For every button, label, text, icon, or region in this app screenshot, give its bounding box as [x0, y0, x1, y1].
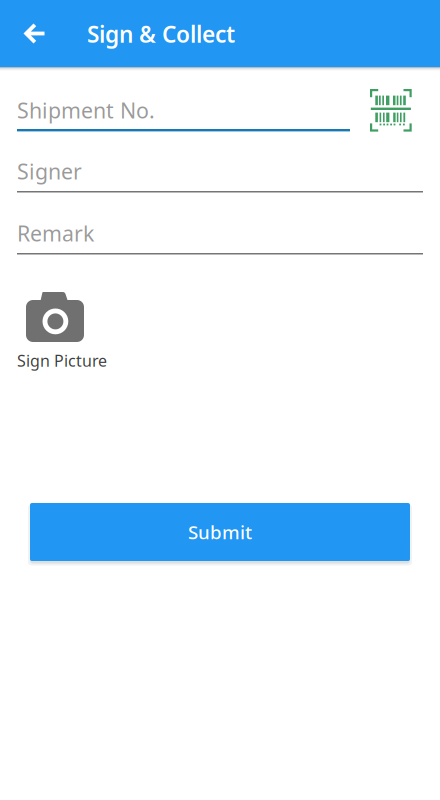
- staticText: Sign & Collect: [87, 19, 235, 49]
- staticText: Shipment No.: [17, 96, 155, 124]
- button[interactable]: Scan barcode: [370, 89, 412, 132]
- button[interactable]: Signer: [17, 157, 423, 199]
- staticText: Remark: [17, 219, 94, 247]
- staticText: Sign Picture: [17, 350, 107, 371]
- button[interactable]: Sign Picture: [17, 292, 117, 378]
- staticText: Submit: [188, 520, 252, 544]
- staticText: Signer: [17, 157, 82, 185]
- button[interactable]: Submit: [30, 503, 410, 561]
- button[interactable]: Remark: [17, 219, 423, 261]
- button[interactable]: Back: [6, 5, 62, 61]
- button[interactable]: Shipment No.: [17, 96, 350, 138]
